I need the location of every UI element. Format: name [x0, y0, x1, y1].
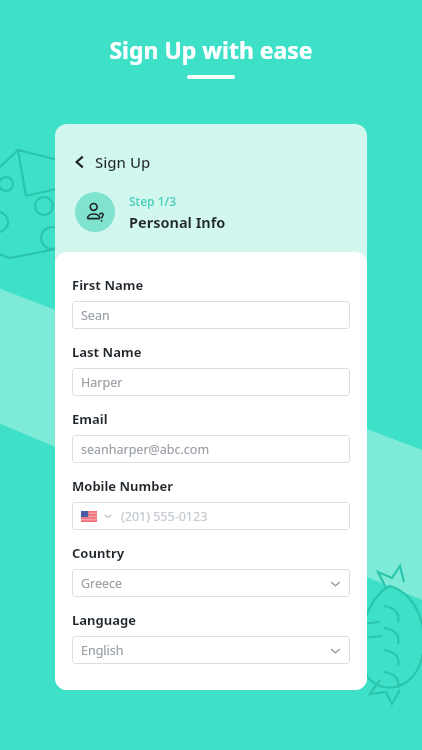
button[interactable]: Back — [55, 124, 169, 178]
other: Profile — [84, 201, 106, 223]
staticText: English — [81, 642, 330, 659]
button[interactable]: (201) 555-0123 — [72, 502, 350, 530]
staticText: seanharper@abc.com — [81, 441, 210, 458]
staticText: First Name — [72, 276, 144, 294]
staticText: Harper — [81, 374, 123, 391]
button[interactable]: English — [72, 636, 350, 664]
staticText: Personal Info — [129, 212, 226, 232]
button[interactable]: seanharper@abc.com — [72, 435, 350, 463]
staticText: Sean — [81, 307, 110, 324]
other: Back — [73, 155, 87, 169]
staticText: Language — [72, 611, 136, 629]
staticText: Sign Up — [95, 152, 151, 172]
staticText: Sign Up with ease — [109, 34, 313, 65]
button[interactable]: Harper — [72, 368, 350, 396]
button[interactable]: Greece — [72, 569, 350, 597]
staticText: Mobile Number — [72, 477, 173, 495]
other: Open Country list — [330, 578, 341, 589]
other: Open Language list — [330, 645, 341, 656]
staticText: Email — [72, 410, 108, 428]
staticText: Country — [72, 544, 125, 562]
staticText: Greece — [81, 575, 330, 592]
staticText: (201) 555-0123 — [121, 508, 208, 525]
button[interactable]: Sean — [72, 301, 350, 329]
staticText: Last Name — [72, 343, 142, 361]
staticText: Step 1/3 — [129, 193, 176, 209]
